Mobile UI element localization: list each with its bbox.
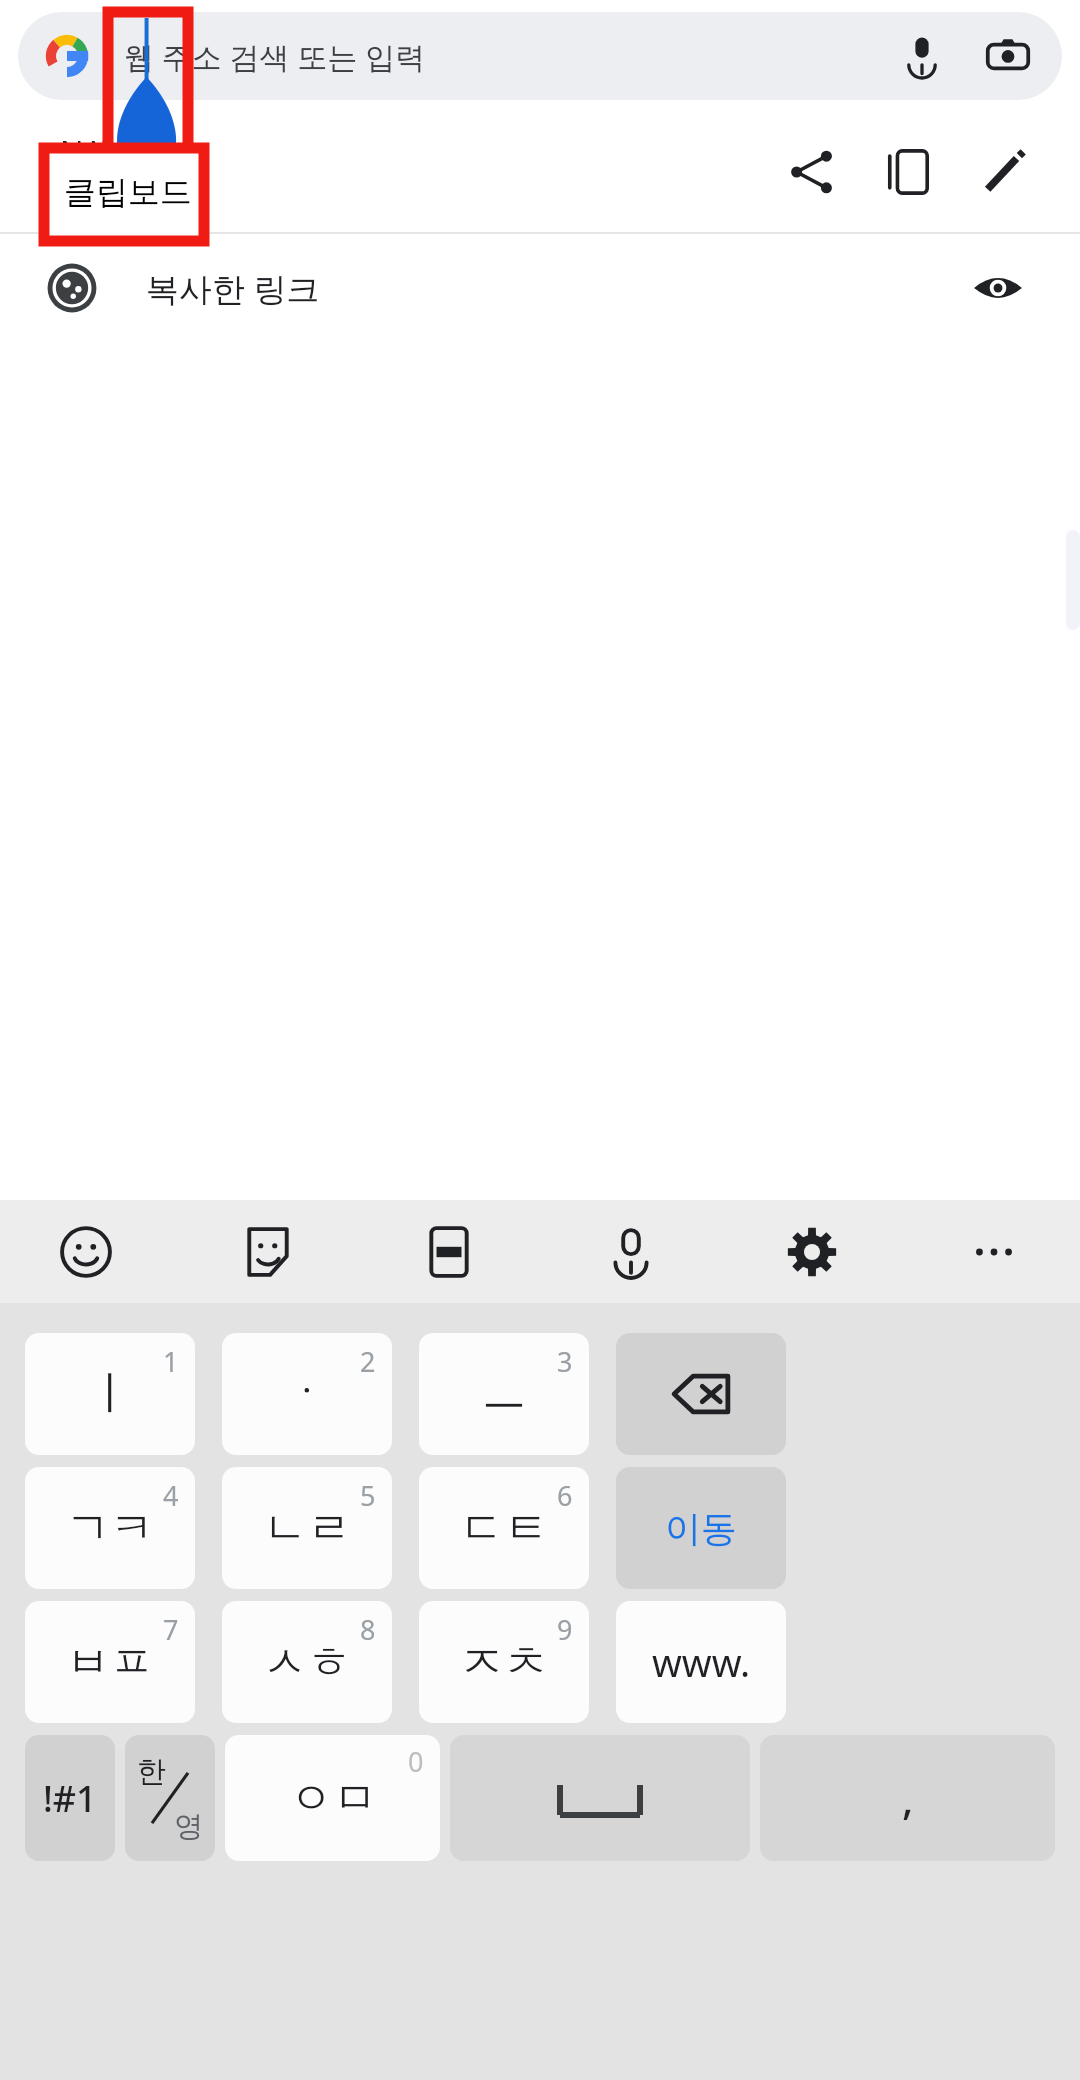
staticText: 이동 xyxy=(665,1506,737,1551)
staticText: ㅡ xyxy=(481,1365,527,1423)
staticText: 0 xyxy=(408,1743,424,1780)
staticText: 9 xyxy=(557,1611,573,1648)
staticText: ㄱㅋ xyxy=(66,1501,154,1556)
staticText: ㅣ xyxy=(87,1365,133,1423)
staticText: 복사한 링크 xyxy=(146,266,320,311)
staticText: 4 xyxy=(163,1477,179,1514)
button[interactable]: 0 xyxy=(225,1735,440,1861)
staticText: ㅅㅎ xyxy=(263,1635,351,1690)
staticText: ㅈㅊ xyxy=(460,1635,548,1690)
button[interactable]: www. xyxy=(616,1601,786,1723)
staticText: www. xyxy=(652,1636,751,1688)
button[interactable]: Space xyxy=(450,1735,750,1861)
button[interactable]: Search with camera xyxy=(980,28,1036,84)
button[interactable]: Preview xyxy=(962,252,1034,324)
button[interactable]: 8 xyxy=(222,1601,392,1723)
button[interactable]: Voice search xyxy=(894,28,950,84)
button[interactable]: Korean English toggle xyxy=(125,1735,215,1861)
button[interactable]: Voice input xyxy=(585,1206,677,1298)
button[interactable]: 3 xyxy=(419,1333,589,1455)
button[interactable]: 5 xyxy=(222,1467,392,1589)
button[interactable]: Copy xyxy=(860,124,956,220)
staticText: 1 xyxy=(163,1343,179,1380)
staticText: NAVER xyxy=(60,130,158,172)
staticText: 5 xyxy=(360,1477,376,1514)
staticText: ㅂㅍ xyxy=(66,1635,154,1690)
button[interactable]: Backspace xyxy=(616,1333,786,1455)
staticText: 3 xyxy=(557,1343,573,1380)
staticText: ㆍ xyxy=(284,1365,330,1423)
staticText: 6 xyxy=(557,1477,573,1514)
staticText: !#1 xyxy=(43,1774,97,1823)
button[interactable]: 웹 주소 검색 또는 입력 xyxy=(18,12,1062,100)
button[interactable]: More options xyxy=(948,1206,1040,1298)
staticText: ㄷㅌ xyxy=(460,1501,548,1556)
button[interactable]: GIF xyxy=(403,1206,495,1298)
staticText: ㄴㄹ xyxy=(263,1501,351,1556)
button[interactable]: Edit xyxy=(956,124,1052,220)
staticText: 웹 주소 검색 또는 입력 xyxy=(124,36,426,77)
staticText: 클립보드 xyxy=(64,172,192,212)
button[interactable]: 복사한 링크 xyxy=(0,234,1080,342)
staticText: 2 xyxy=(360,1343,376,1380)
button[interactable]: 이동 xyxy=(616,1467,786,1589)
staticText: 7 xyxy=(163,1611,179,1648)
button[interactable]: 1 xyxy=(25,1333,195,1455)
staticText: 한 xyxy=(137,1753,166,1790)
button[interactable]: 6 xyxy=(419,1467,589,1589)
button[interactable]: Share xyxy=(764,124,860,220)
staticText: 8 xyxy=(360,1611,376,1648)
button[interactable]: , xyxy=(760,1735,1055,1861)
button[interactable]: 9 xyxy=(419,1601,589,1723)
button[interactable]: 4 xyxy=(25,1467,195,1589)
button[interactable]: !#1 xyxy=(25,1735,115,1861)
button[interactable]: Stickers xyxy=(222,1206,314,1298)
button[interactable]: 2 xyxy=(222,1333,392,1455)
button[interactable]: Settings xyxy=(766,1206,858,1298)
staticText: 영 xyxy=(174,1808,203,1845)
staticText: , xyxy=(902,1770,914,1827)
staticText: ㅇㅁ xyxy=(289,1771,377,1826)
button[interactable]: Emoji xyxy=(40,1206,132,1298)
staticText: naver.com xyxy=(60,176,195,214)
button[interactable]: 7 xyxy=(25,1601,195,1723)
